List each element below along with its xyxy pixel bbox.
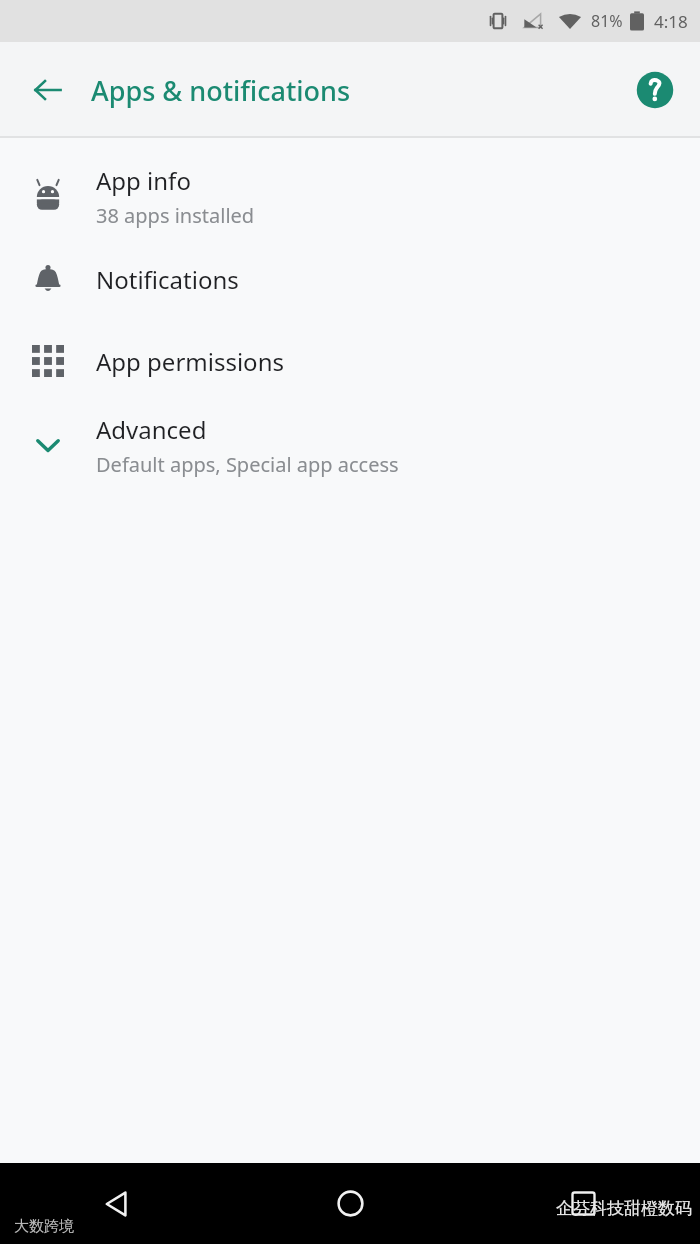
- button[interactable]: Help: [630, 65, 680, 115]
- staticText: 4:18: [654, 10, 688, 33]
- button[interactable]: App permissions: [0, 320, 700, 402]
- staticText: Notifications: [96, 263, 239, 296]
- staticText: Default apps, Special app access: [96, 451, 399, 478]
- button[interactable]: Notifications: [0, 238, 700, 320]
- staticText: App permissions: [96, 345, 284, 378]
- button[interactable]: Home: [234, 1163, 467, 1244]
- staticText: 38 apps installed: [96, 202, 255, 229]
- button[interactable]: Back: [18, 60, 78, 120]
- staticText: 大数跨境: [14, 1217, 74, 1236]
- button[interactable]: Advanced: [0, 402, 700, 488]
- staticText: 81%: [591, 10, 623, 32]
- staticText: Apps & notifications: [91, 72, 351, 109]
- button[interactable]: Back: [0, 1163, 234, 1244]
- button[interactable]: Recent apps: [467, 1163, 700, 1244]
- staticText: Advanced: [96, 413, 207, 446]
- staticText: 企芬科技甜橙数码: [556, 1198, 692, 1219]
- button[interactable]: App info: [0, 154, 700, 238]
- staticText: App info: [96, 164, 191, 197]
